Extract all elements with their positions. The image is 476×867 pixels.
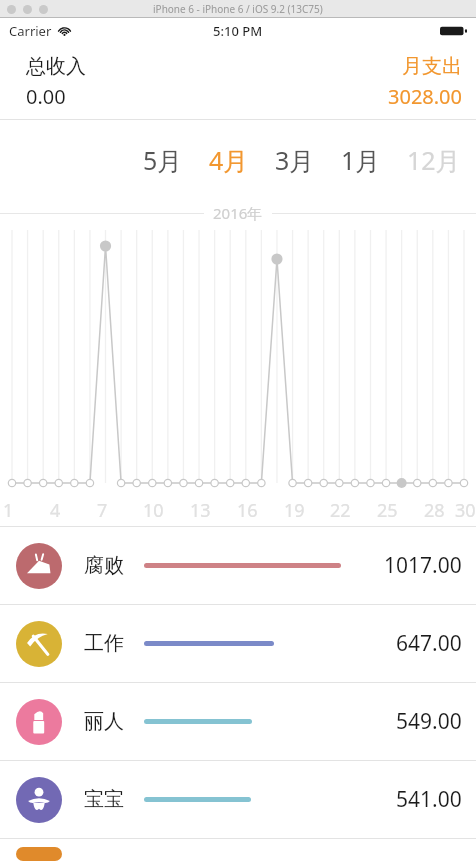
- staticText: 22: [330, 498, 351, 523]
- staticText: 腐败: [84, 553, 124, 578]
- staticText: iPhone 6 - iPhone 6 / iOS 9.2 (13C75): [153, 2, 323, 16]
- staticText: 16: [237, 498, 258, 523]
- staticText: 总收入: [26, 54, 86, 79]
- staticText: 1月: [341, 143, 381, 177]
- staticText: 5:10 PM: [213, 22, 263, 40]
- staticText: 12月: [407, 143, 461, 177]
- staticText: 5月: [143, 143, 183, 177]
- button[interactable]: 12月: [394, 133, 474, 187]
- other: 宝宝: [16, 777, 62, 823]
- staticText: 13: [190, 498, 211, 523]
- staticText: 28: [424, 498, 445, 523]
- staticText: 工作: [84, 631, 124, 656]
- button[interactable]: 宝宝: [0, 761, 476, 838]
- staticText: 月支出: [402, 54, 462, 79]
- staticText: 549.00: [396, 707, 462, 736]
- button[interactable]: 1月: [328, 133, 394, 187]
- staticText: 3月: [275, 143, 315, 177]
- staticText: 0.00: [26, 83, 66, 110]
- staticText: Carrier: [9, 22, 52, 40]
- staticText: 10: [143, 498, 164, 523]
- staticText: 宝宝: [84, 787, 124, 812]
- staticText: 4: [50, 498, 61, 523]
- staticText: 丽人: [84, 709, 124, 734]
- button[interactable]: 腐败: [0, 527, 476, 604]
- staticText: 7: [97, 498, 108, 523]
- staticText: 541.00: [396, 785, 462, 814]
- staticText: 3028.00: [388, 83, 462, 110]
- button[interactable]: 4月: [196, 133, 262, 187]
- button[interactable]: 丽人: [0, 683, 476, 760]
- staticText: 25: [377, 498, 398, 523]
- staticText: 2016年: [213, 203, 263, 223]
- other: 工作: [16, 621, 62, 667]
- staticText: 1: [3, 498, 14, 523]
- other: 腐败: [16, 543, 62, 589]
- staticText: 4月: [209, 143, 249, 177]
- staticText: 30: [455, 498, 476, 523]
- button[interactable]: 工作: [0, 605, 476, 682]
- staticText: 647.00: [396, 629, 462, 658]
- staticText: 19: [284, 498, 305, 523]
- button[interactable]: 5月: [130, 133, 196, 187]
- button[interactable]: 3月: [262, 133, 328, 187]
- staticText: 1017.00: [384, 551, 462, 580]
- other: 丽人: [16, 699, 62, 745]
